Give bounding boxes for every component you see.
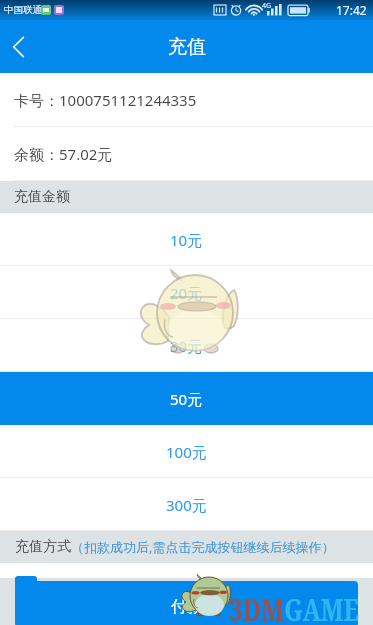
staticText: 4G xyxy=(262,1,272,11)
staticText: 付款 xyxy=(171,597,203,617)
staticText: 充值金额 xyxy=(14,188,70,206)
button[interactable]: 30元 xyxy=(0,319,373,372)
staticText: 充值方式 xyxy=(15,538,71,556)
button[interactable]: 付款 xyxy=(15,581,358,625)
button[interactable]: Back xyxy=(0,20,38,73)
button[interactable]: 50元 xyxy=(0,372,373,425)
button[interactable]: 卡号：1000751121244335 xyxy=(0,73,373,127)
staticText: 中国联通 xyxy=(4,4,42,16)
button[interactable]: 10元 xyxy=(0,213,373,266)
staticText: 300元 xyxy=(166,495,207,515)
staticText: 3DM xyxy=(229,589,284,625)
staticText: 10元 xyxy=(170,230,203,250)
staticText: 充值 xyxy=(168,35,206,59)
staticText: 余额：57.02元 xyxy=(14,144,113,164)
staticText: 20元 xyxy=(170,283,203,303)
button[interactable]: 20元 xyxy=(0,266,373,319)
staticText: 50元 xyxy=(170,389,203,409)
button[interactable]: 100元 xyxy=(0,425,373,478)
staticText: 100元 xyxy=(166,442,207,462)
button[interactable]: 余额：57.02元 xyxy=(0,127,373,181)
staticText: 卡号：1000751121244335 xyxy=(14,90,197,110)
staticText: 30元 xyxy=(170,336,203,356)
staticText: （扣款成功后,需点击完成按钮继续后续操作） xyxy=(71,538,335,556)
button[interactable]: 300元 xyxy=(0,478,373,531)
staticText: GAME xyxy=(284,589,359,625)
staticText: 17:42 xyxy=(336,2,367,18)
